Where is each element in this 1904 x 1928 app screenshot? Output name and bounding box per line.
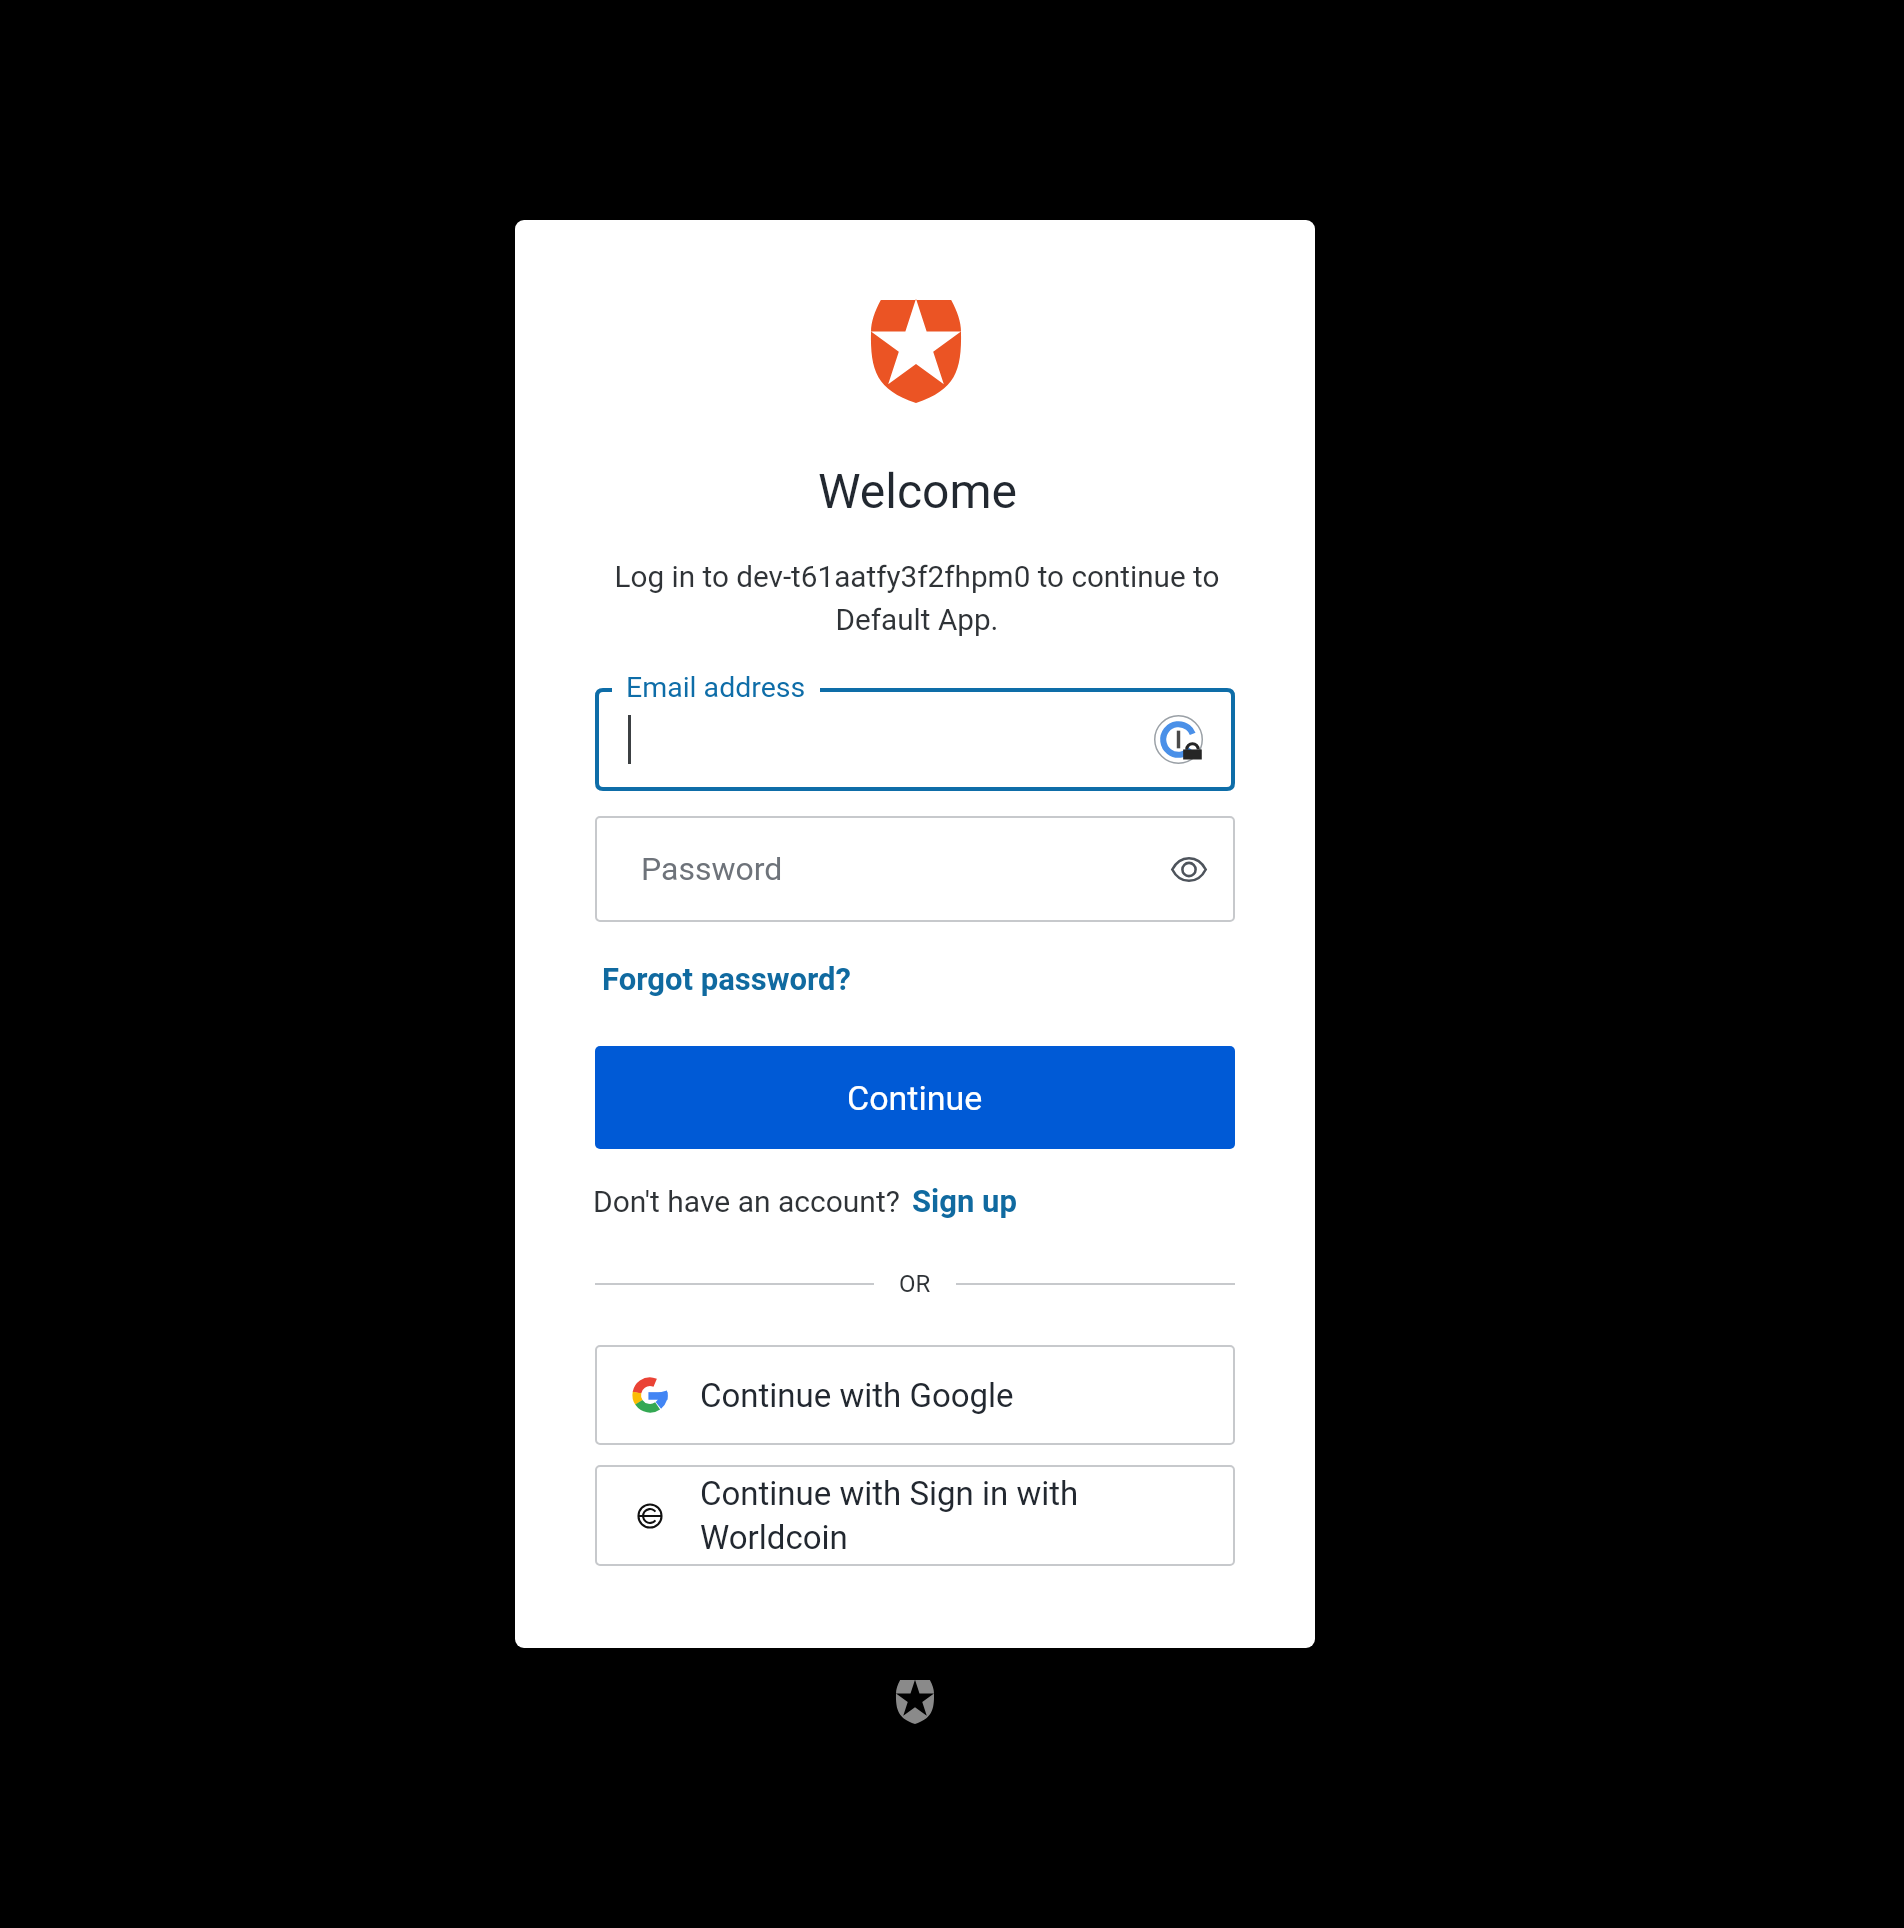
staticText: Password: [641, 850, 783, 888]
staticText: Log in to dev-t61aatfy3f2fhpm0 to contin…: [597, 559, 1237, 638]
button[interactable]: Continue with Google: [595, 1345, 1235, 1445]
staticText: Continue with Sign in with Worldcoin: [700, 1474, 1190, 1557]
staticText: Forgot password?: [602, 961, 851, 997]
button[interactable]: Forgot password?: [602, 961, 851, 997]
staticText: Continue with Google: [700, 1376, 1190, 1415]
button[interactable]: Password: [595, 816, 1235, 922]
button[interactable]: Show password: [1171, 856, 1207, 883]
staticText: Sign up: [912, 1183, 1017, 1219]
staticText: Welcome: [818, 463, 1018, 519]
button[interactable]: Fill from password manager: [1154, 715, 1203, 764]
staticText: Email address: [626, 671, 806, 704]
button[interactable]: Email address: [595, 688, 1235, 791]
staticText: Don't have an account?: [593, 1184, 900, 1219]
button[interactable]: Continue: [595, 1046, 1235, 1149]
staticText: OR: [899, 1270, 931, 1298]
button[interactable]: Sign up: [912, 1183, 1017, 1219]
staticText: Continue: [847, 1078, 983, 1118]
button[interactable]: Continue with Sign in with Worldcoin: [595, 1465, 1235, 1566]
